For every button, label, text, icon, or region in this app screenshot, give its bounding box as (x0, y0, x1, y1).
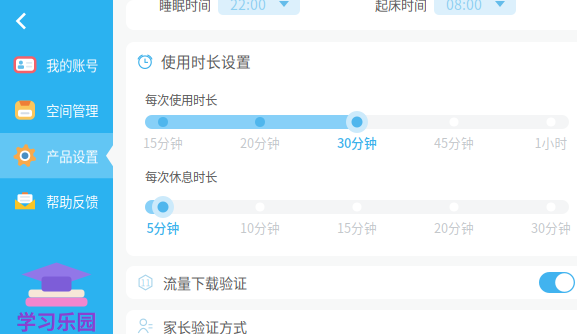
button[interactable]: 家长验证方式 (126, 310, 577, 334)
staticText: 08:00 (446, 0, 482, 14)
button[interactable]: 11 (126, 266, 577, 299)
staticText: 11 (140, 276, 150, 289)
staticText: 45分钟 (434, 133, 474, 152)
staticText: 30分钟 (337, 133, 377, 152)
staticText: 产品设置 (46, 146, 98, 165)
button[interactable]: 我的账号 (0, 42, 113, 87)
button[interactable]: 22:00 (218, 0, 300, 15)
staticText: 我的账号 (46, 55, 98, 74)
staticText: 22:00 (230, 0, 266, 14)
staticText: 30分钟 (531, 218, 571, 237)
staticText: 使用时长设置 (161, 50, 251, 72)
button[interactable]: 产品设置 (0, 133, 113, 178)
staticText: 15分钟 (143, 133, 183, 152)
staticText: 睡眠时间 (159, 0, 211, 13)
staticText: 流量下载验证 (163, 272, 247, 293)
staticText: 1小时 (534, 133, 567, 152)
staticText: 每次使用时长 (145, 90, 217, 108)
staticText: 空间管理 (46, 101, 98, 120)
staticText: 5分钟 (146, 218, 179, 237)
staticText: 帮助反馈 (46, 192, 98, 211)
staticText: 起床时间 (375, 0, 427, 13)
staticText: 学习乐园 (16, 306, 96, 334)
staticText: 20分钟 (240, 133, 280, 152)
button[interactable]: 08:00 (434, 0, 516, 15)
button[interactable]: 空间管理 (0, 87, 113, 133)
staticText: 家长验证方式 (163, 316, 247, 334)
staticText: 15分钟 (337, 218, 377, 237)
staticText: 20分钟 (434, 218, 474, 237)
staticText: 每次休息时长 (145, 167, 217, 185)
staticText: 10分钟 (240, 218, 280, 237)
button[interactable]: 帮助反馈 (0, 178, 113, 224)
button[interactable]: Back (0, 0, 113, 42)
